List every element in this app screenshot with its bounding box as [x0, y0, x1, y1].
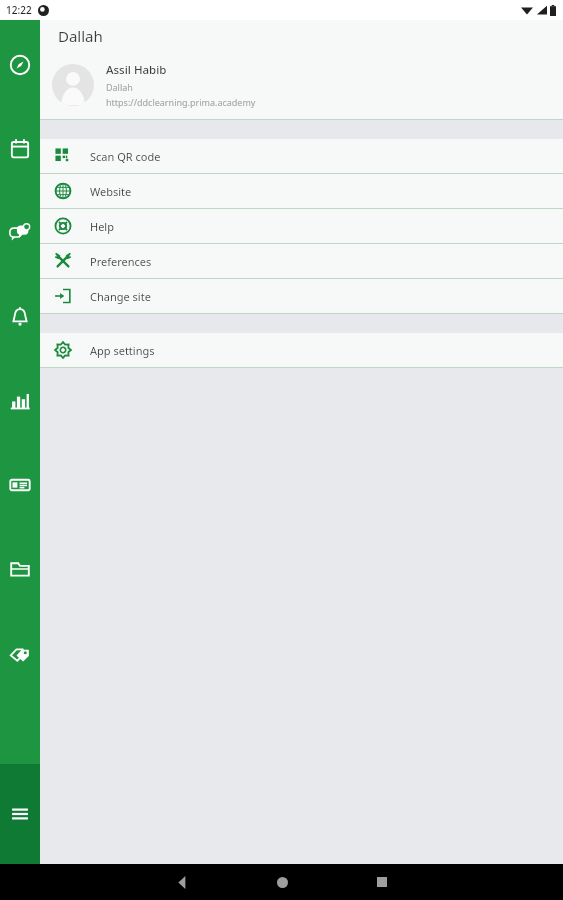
- staticText: Scan QR code: [90, 149, 161, 164]
- staticText: Dallah: [106, 81, 133, 93]
- button[interactable]: Back: [132, 864, 232, 900]
- button[interactable]: Tags: [0, 642, 40, 668]
- button[interactable]: Assil Habib: [40, 51, 563, 119]
- staticText: Dallah: [58, 26, 103, 46]
- staticText: App settings: [90, 343, 155, 358]
- button[interactable]: Files: [0, 556, 40, 582]
- button[interactable]: App settings: [40, 333, 563, 367]
- button[interactable]: Scan QR code: [40, 139, 563, 173]
- button[interactable]: Notifications: [0, 304, 40, 330]
- button[interactable]: Change site: [40, 279, 563, 313]
- staticText: Change site: [90, 289, 151, 304]
- button[interactable]: Messages: [0, 220, 40, 246]
- button[interactable]: Home: [232, 864, 332, 900]
- staticText: Help: [90, 219, 114, 234]
- button[interactable]: Reports: [0, 388, 40, 414]
- button[interactable]: Preferences: [40, 244, 563, 278]
- button[interactable]: Recent apps: [332, 864, 432, 900]
- button[interactable]: Website: [40, 174, 563, 208]
- button[interactable]: Menu: [0, 764, 40, 864]
- staticText: Website: [90, 184, 132, 199]
- button[interactable]: Dashboard: [0, 52, 40, 78]
- button[interactable]: Help: [40, 209, 563, 243]
- staticText: https://ddclearning.prima.academy: [106, 96, 256, 108]
- staticText: Preferences: [90, 254, 152, 269]
- staticText: Assil Habib: [106, 62, 167, 78]
- staticText: 12:22: [6, 3, 32, 17]
- button[interactable]: Cards: [0, 472, 40, 498]
- button[interactable]: Calendar: [0, 136, 40, 162]
